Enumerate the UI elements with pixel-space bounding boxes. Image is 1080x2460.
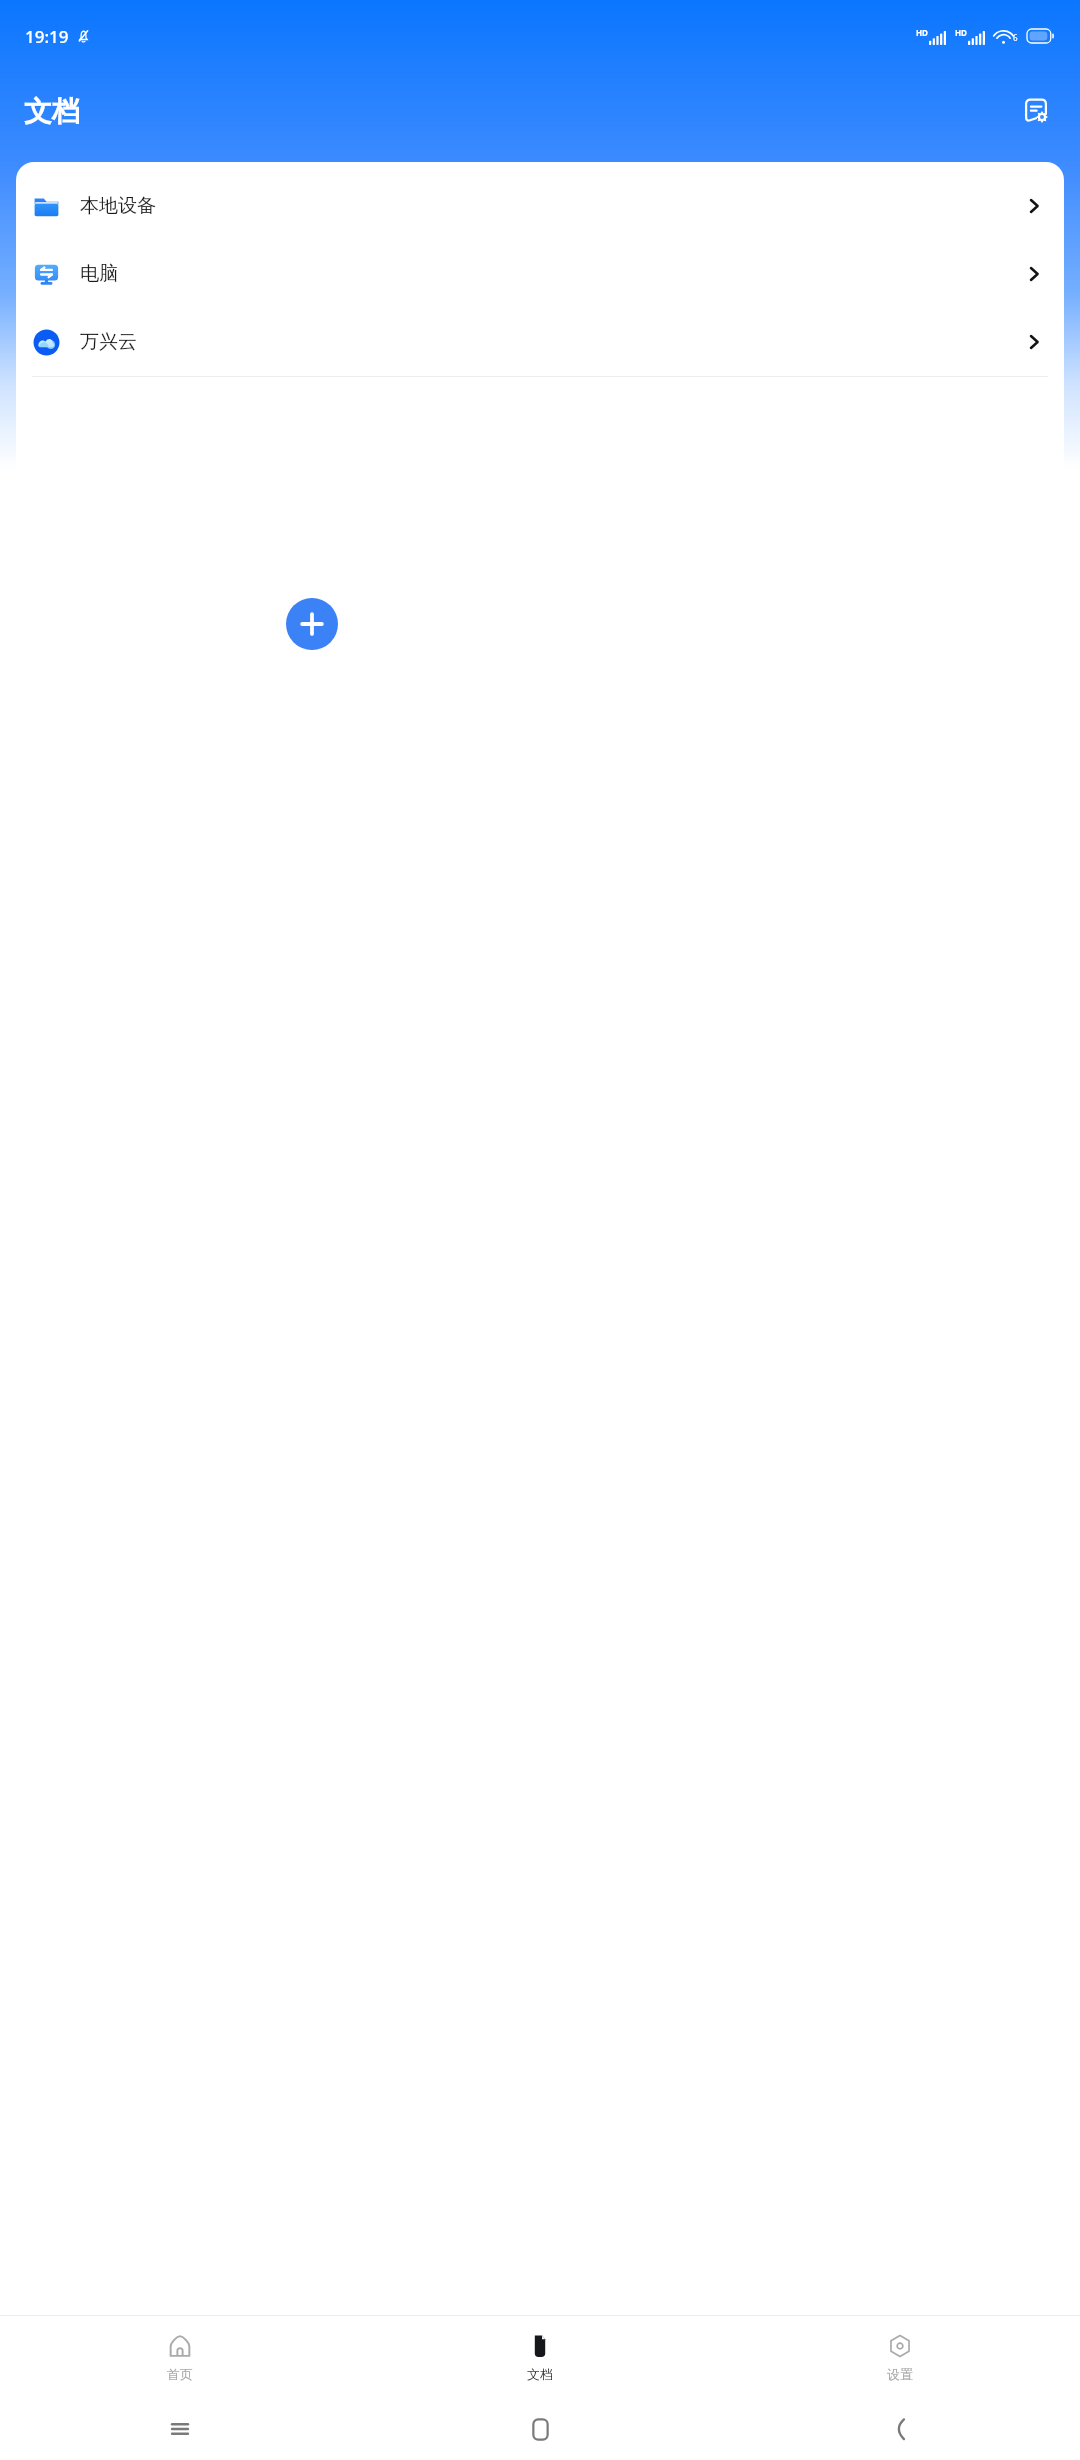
staticText: 6	[1013, 32, 1018, 43]
button[interactable]: Add	[286, 598, 338, 650]
staticText: 本地设备	[80, 194, 156, 218]
button[interactable]: 首页	[0, 2316, 360, 2398]
staticText: 19:19	[25, 25, 69, 48]
staticText: 首页	[167, 2366, 193, 2382]
button[interactable]: 万兴云	[16, 308, 1064, 376]
staticText: 设置	[887, 2366, 913, 2382]
staticText: 文档	[527, 2366, 553, 2382]
button[interactable]: 电脑	[16, 240, 1064, 308]
button[interactable]: 设置	[720, 2316, 1080, 2398]
staticText: 文档	[24, 94, 80, 129]
staticText: 电脑	[80, 262, 118, 286]
button[interactable]: Home	[360, 2398, 720, 2460]
button[interactable]: Document settings	[1014, 89, 1058, 133]
button[interactable]: 本地设备	[16, 172, 1064, 240]
staticText: HD	[955, 27, 967, 38]
staticText: HD	[916, 27, 928, 38]
staticText: 万兴云	[80, 330, 137, 354]
button[interactable]: Recents	[0, 2398, 360, 2460]
button[interactable]: Back	[720, 2398, 1080, 2460]
button[interactable]: 文档	[360, 2316, 720, 2398]
